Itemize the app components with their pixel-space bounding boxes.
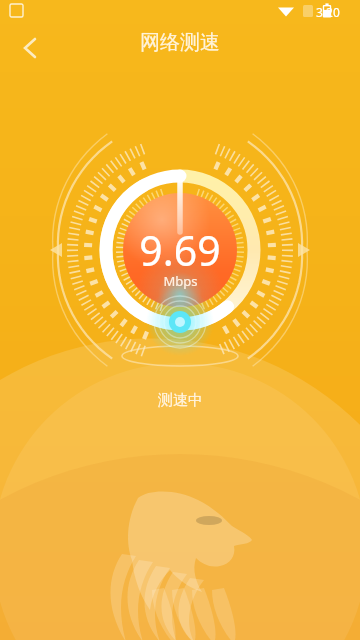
staticText: Mbps [163, 272, 198, 290]
staticText: 9.69 [139, 222, 221, 278]
staticText: 3:20 [316, 4, 340, 20]
staticText: 网络测速 [140, 30, 220, 55]
button[interactable]: Back [8, 26, 52, 70]
staticText: 测速中 [158, 391, 203, 410]
